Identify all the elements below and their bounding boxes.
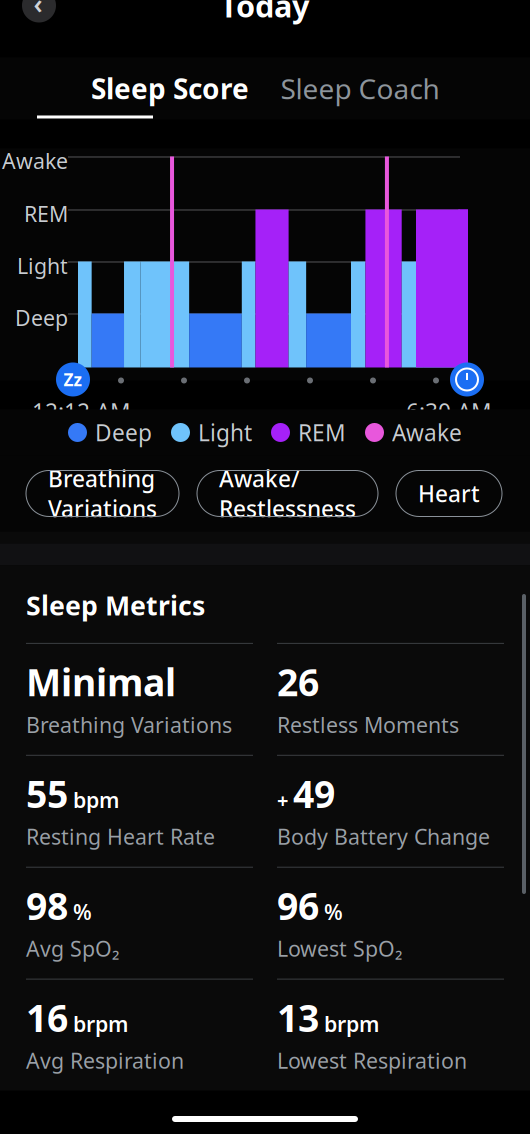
staticText: Breathing Variations — [26, 710, 232, 739]
button[interactable]: Previous day — [22, 0, 56, 23]
button[interactable]: Awake/Restlessness — [197, 470, 378, 516]
staticText: 98 — [26, 881, 68, 930]
staticText: ‹ — [33, 0, 42, 21]
staticText: Avg SpO₂ — [26, 934, 119, 963]
staticText: Deep — [95, 417, 152, 447]
staticText: 26 — [277, 657, 319, 706]
staticText: % — [324, 897, 343, 926]
staticText: 13 — [277, 993, 319, 1042]
staticText: 12:12 AM — [32, 396, 131, 427]
staticText: Sleep Score — [91, 70, 249, 107]
staticText: Sleep Metrics — [26, 587, 205, 623]
staticText: Light — [198, 417, 252, 447]
staticText: Awake/Restlessness — [219, 463, 356, 524]
button[interactable]: Sleep Coach — [265, 58, 455, 118]
button[interactable]: Heart — [396, 470, 502, 516]
staticText: Deep — [15, 303, 68, 332]
staticText: Restless Moments — [277, 710, 459, 739]
staticText: 6:30 AM — [406, 396, 492, 427]
staticText: Resting Heart Rate — [26, 822, 215, 851]
staticText: brpm — [324, 1009, 379, 1038]
staticText: Minimal — [26, 657, 176, 706]
staticText: Breathing Variations — [48, 463, 157, 524]
staticText: % — [73, 897, 92, 926]
staticText: Light — [17, 251, 68, 280]
staticText: Zz — [63, 368, 82, 391]
staticText: 55 — [26, 769, 68, 818]
staticText: Lowest SpO₂ — [277, 934, 402, 963]
button[interactable]: Breathing Variations — [26, 470, 179, 516]
staticText: bpm — [73, 786, 119, 814]
staticText: Today — [220, 0, 310, 26]
staticText: brpm — [73, 1009, 128, 1038]
staticText: Body Battery Change — [277, 822, 490, 851]
staticText: REM — [298, 417, 346, 447]
staticText: REM — [24, 199, 68, 228]
staticText: 16 — [26, 993, 68, 1042]
staticText: 96 — [277, 881, 319, 930]
staticText: Awake — [2, 146, 68, 175]
staticText: Avg Respiration — [26, 1046, 184, 1074]
staticText: Awake — [392, 417, 462, 447]
staticText: Heart — [418, 478, 480, 508]
button[interactable]: Sleep Score — [75, 58, 265, 118]
staticText: Lowest Respiration — [277, 1046, 467, 1074]
staticText: 49 — [293, 769, 335, 818]
staticText: + — [277, 787, 288, 814]
staticText: Sleep Coach — [280, 70, 439, 107]
